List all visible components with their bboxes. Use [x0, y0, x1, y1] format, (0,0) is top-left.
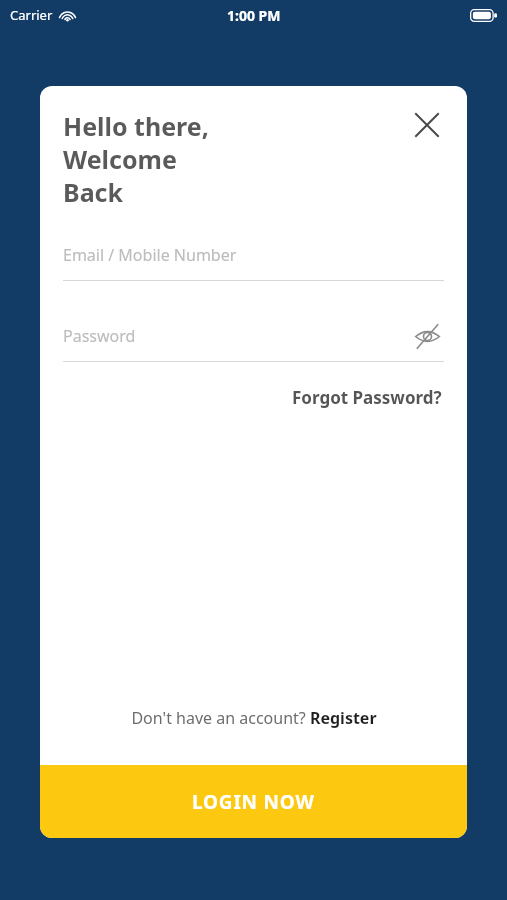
button[interactable]: Don't have an account? Register: [127, 703, 381, 733]
button[interactable]: LOGIN NOW: [40, 765, 467, 838]
button[interactable]: Close: [405, 103, 449, 147]
staticText: Forgot Password?: [292, 386, 442, 409]
button[interactable]: Forgot Password?: [290, 383, 444, 412]
staticText: Email / Mobile Number: [63, 244, 444, 266]
button[interactable]: Show password: [410, 319, 444, 353]
staticText: Hello there, Welcome Back: [63, 109, 405, 209]
button[interactable]: Email / Mobile Number: [63, 236, 444, 281]
staticText: 1:00 PM: [227, 6, 281, 25]
staticText: Password: [63, 325, 410, 347]
staticText: Carrier: [10, 6, 53, 24]
button[interactable]: Password: [63, 317, 444, 362]
staticText: Don't have an account? Register: [131, 707, 377, 729]
staticText: LOGIN NOW: [192, 789, 315, 815]
